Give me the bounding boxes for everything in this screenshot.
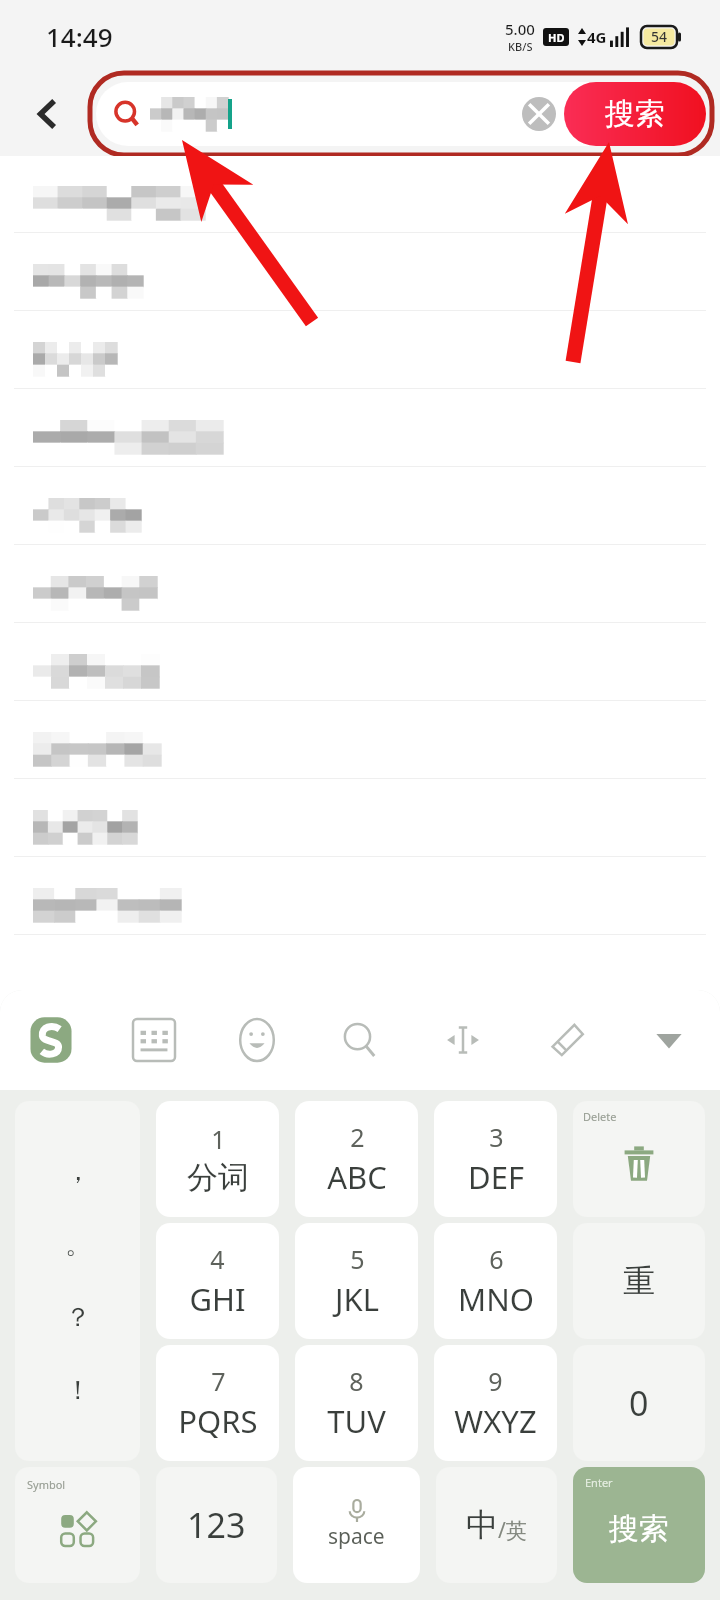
button[interactable]: 重 bbox=[573, 1223, 705, 1339]
staticText: 8 bbox=[349, 1364, 364, 1398]
button[interactable] bbox=[0, 560, 720, 638]
staticText: 6 bbox=[489, 1242, 504, 1276]
button[interactable]: 搜索 bbox=[564, 82, 706, 146]
staticText: 2 bbox=[350, 1120, 365, 1154]
staticText: 5 bbox=[350, 1242, 365, 1276]
staticText: HD bbox=[548, 30, 565, 45]
staticText: 中 bbox=[466, 1505, 498, 1545]
button[interactable]: Symbol bbox=[15, 1467, 140, 1583]
staticText: Delete bbox=[583, 1109, 617, 1124]
button[interactable]: 3 bbox=[434, 1101, 557, 1217]
staticText: JKL bbox=[335, 1278, 379, 1320]
other: Search icon bbox=[112, 99, 142, 129]
staticText: Symbol bbox=[27, 1477, 66, 1492]
button[interactable]: Back bbox=[0, 72, 96, 156]
button[interactable]: Delete bbox=[573, 1101, 705, 1217]
staticText: 4 bbox=[210, 1242, 225, 1276]
staticText: space bbox=[328, 1522, 385, 1551]
button[interactable]: 中 bbox=[436, 1467, 557, 1583]
staticText: 搜索 bbox=[605, 95, 665, 133]
button[interactable]: 5 bbox=[295, 1223, 418, 1339]
button[interactable] bbox=[0, 794, 720, 872]
button[interactable]: Theme bbox=[514, 990, 617, 1090]
button[interactable]: 9 bbox=[434, 1345, 557, 1461]
staticText: 3 bbox=[489, 1120, 504, 1154]
button[interactable] bbox=[0, 872, 720, 950]
staticText: ， bbox=[65, 1155, 91, 1188]
staticText: WXYZ bbox=[454, 1400, 537, 1442]
button[interactable]: Sogou input bbox=[0, 990, 102, 1090]
staticText: 9 bbox=[488, 1364, 503, 1398]
staticText: KB/S bbox=[508, 39, 533, 54]
staticText: DEF bbox=[468, 1156, 524, 1198]
staticText: GHI bbox=[189, 1278, 246, 1320]
staticText: 7 bbox=[211, 1364, 226, 1398]
staticText: 0 bbox=[629, 1380, 649, 1426]
button[interactable] bbox=[0, 170, 720, 248]
button[interactable]: Clear bbox=[522, 97, 556, 131]
staticText: ABC bbox=[327, 1156, 387, 1198]
button[interactable]: 7 bbox=[156, 1345, 279, 1461]
staticText: 54 bbox=[651, 27, 668, 46]
button[interactable]: Emoji bbox=[205, 990, 308, 1090]
staticText: ！ bbox=[65, 1374, 91, 1407]
staticText: TUV bbox=[327, 1400, 386, 1442]
button[interactable]: Hide keyboard bbox=[617, 990, 720, 1090]
button[interactable] bbox=[0, 716, 720, 794]
button[interactable]: Enter bbox=[573, 1467, 705, 1583]
button[interactable] bbox=[0, 404, 720, 482]
staticText: /英 bbox=[498, 1516, 527, 1545]
button[interactable]: 2 bbox=[295, 1101, 418, 1217]
staticText: 14:49 bbox=[46, 19, 113, 54]
button[interactable] bbox=[0, 326, 720, 404]
button[interactable]: 4 bbox=[156, 1223, 279, 1339]
staticText: PQRS bbox=[178, 1400, 258, 1442]
staticText: 。 bbox=[65, 1228, 91, 1261]
button[interactable]: 8 bbox=[295, 1345, 418, 1461]
button[interactable] bbox=[0, 482, 720, 560]
button[interactable]: Search bbox=[308, 990, 411, 1090]
staticText: 搜索 bbox=[609, 1510, 669, 1548]
staticText: ？ bbox=[65, 1301, 91, 1334]
button[interactable] bbox=[0, 248, 720, 326]
staticText: 重 bbox=[623, 1261, 655, 1301]
button[interactable]: 0 bbox=[573, 1345, 705, 1461]
staticText: 1 bbox=[211, 1122, 226, 1156]
button[interactable]: 1 bbox=[156, 1101, 279, 1217]
button[interactable]: ， bbox=[15, 1101, 140, 1461]
staticText: 4G bbox=[587, 27, 607, 47]
staticText: 123 bbox=[187, 1502, 246, 1548]
button[interactable]: 123 bbox=[156, 1467, 277, 1583]
button[interactable]: 6 bbox=[434, 1223, 557, 1339]
button[interactable]: space bbox=[293, 1467, 420, 1583]
staticText: Enter bbox=[585, 1475, 613, 1490]
button[interactable] bbox=[0, 638, 720, 716]
staticText: 5.00 bbox=[505, 19, 535, 39]
staticText: 分词 bbox=[187, 1158, 249, 1197]
staticText: MNO bbox=[458, 1278, 534, 1320]
button[interactable]: Keyboard layout bbox=[102, 990, 205, 1090]
button[interactable]: Move cursor bbox=[411, 990, 514, 1090]
